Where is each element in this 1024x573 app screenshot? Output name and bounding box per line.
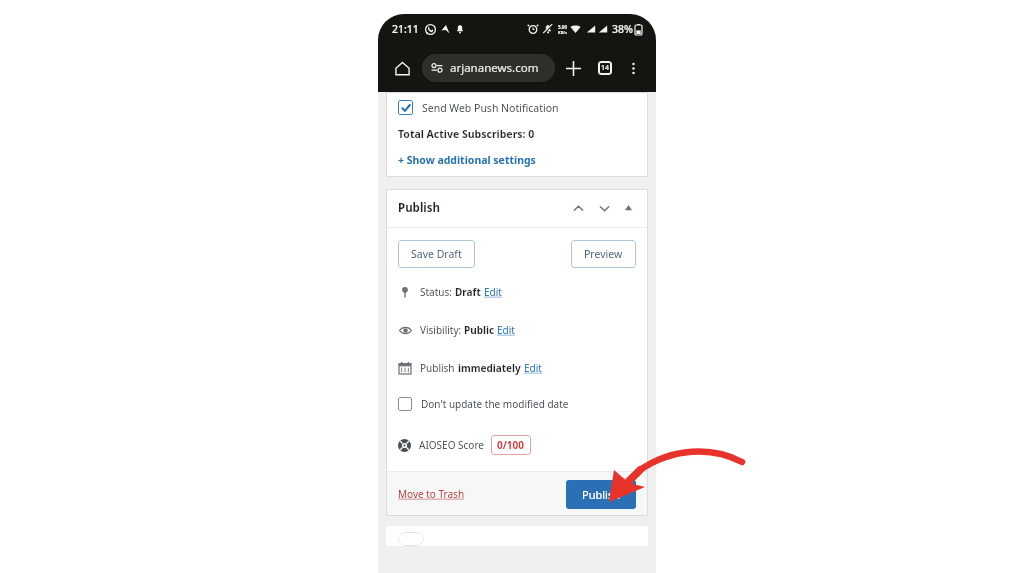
button[interactable]: Save Draft [411, 247, 462, 261]
staticText: arjananews.com [450, 60, 539, 76]
button[interactable]: arjananews.com [422, 54, 555, 82]
button[interactable]: Edit [484, 285, 502, 299]
staticText: 21:11 [392, 22, 419, 36]
staticText: Edit [497, 323, 515, 337]
staticText: Visibility: [420, 323, 464, 337]
button[interactable]: Don't update the modified date [398, 397, 569, 411]
staticText: KB/s [558, 30, 567, 35]
button[interactable]: Preview [584, 247, 623, 261]
staticText: 14 [601, 63, 610, 73]
button[interactable]: Move to Trash [398, 487, 465, 501]
staticText: 0/100 [497, 438, 525, 452]
staticText: 38% [612, 22, 633, 36]
button[interactable]: Tabs [591, 54, 619, 82]
staticText: Publish [582, 487, 620, 502]
staticText: AIOSEO Score [419, 438, 484, 452]
button[interactable]: New tab [559, 54, 587, 82]
button[interactable]: Edit [497, 323, 515, 337]
button[interactable]: Home [389, 55, 415, 81]
staticText: + Show additional settings [398, 153, 536, 167]
staticText: Total Active Subscribers: 0 [398, 127, 535, 141]
button[interactable]: 0/100 [497, 438, 525, 452]
staticText: Public [464, 323, 497, 337]
staticText: Status: [420, 285, 455, 299]
staticText: Draft [455, 285, 484, 299]
staticText: Preview [584, 247, 623, 261]
staticText: immediately [458, 361, 524, 375]
button[interactable]: Move up [568, 198, 588, 218]
staticText: Edit [484, 285, 502, 299]
staticText: Publish [420, 361, 458, 375]
staticText: Send Web Push Notification [422, 101, 559, 115]
staticText: Move to Trash [398, 487, 465, 501]
button[interactable]: Publish [582, 487, 620, 502]
button[interactable]: Toggle panel [620, 200, 636, 216]
button[interactable]: Move down [594, 198, 614, 218]
button[interactable]: Edit [524, 361, 542, 375]
staticText: Don't update the modified date [421, 397, 569, 411]
staticText: Publish [398, 200, 440, 216]
staticText: Save Draft [411, 247, 462, 261]
staticText: Edit [524, 361, 542, 375]
staticText: 5.00 [558, 24, 567, 30]
button[interactable]: + Show additional settings [398, 153, 536, 167]
button[interactable]: More options [621, 56, 645, 80]
button[interactable]: Send Web Push Notification [398, 100, 559, 115]
